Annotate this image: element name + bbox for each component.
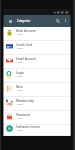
staticText: 1 item <box>16 89 23 92</box>
staticText: 1 item <box>16 47 23 50</box>
button[interactable]: Software License <box>3 125 71 136</box>
staticText: Categories <box>17 19 31 23</box>
staticText: 1 item <box>16 117 23 120</box>
button[interactable]: Search <box>54 17 62 25</box>
button[interactable]: More options <box>62 17 69 24</box>
staticText: 1 item <box>16 103 23 106</box>
staticText: Note <box>16 85 24 89</box>
button[interactable]: Note <box>3 83 71 97</box>
button[interactable]: Bank Account <box>3 27 71 41</box>
button[interactable]: Password <box>3 111 71 125</box>
staticText: 1 item <box>16 33 23 36</box>
button[interactable]: Membership <box>3 97 71 111</box>
staticText: 1 item <box>16 61 23 64</box>
staticText: Email Account <box>16 57 37 61</box>
staticText: Credit Card <box>16 43 33 47</box>
staticText: Bank Account <box>16 29 36 33</box>
button[interactable]: Email Account <box>3 55 71 69</box>
staticText: Login <box>16 71 24 75</box>
staticText: Password <box>16 113 30 117</box>
staticText: Membership <box>16 99 35 103</box>
button[interactable]: Credit Card <box>3 41 71 55</box>
staticText: Software License <box>16 125 41 129</box>
button[interactable]: Open navigation menu <box>6 17 14 25</box>
button[interactable]: Login <box>3 69 71 83</box>
staticText: 1 item <box>16 129 23 132</box>
staticText: 1 item <box>16 75 23 78</box>
